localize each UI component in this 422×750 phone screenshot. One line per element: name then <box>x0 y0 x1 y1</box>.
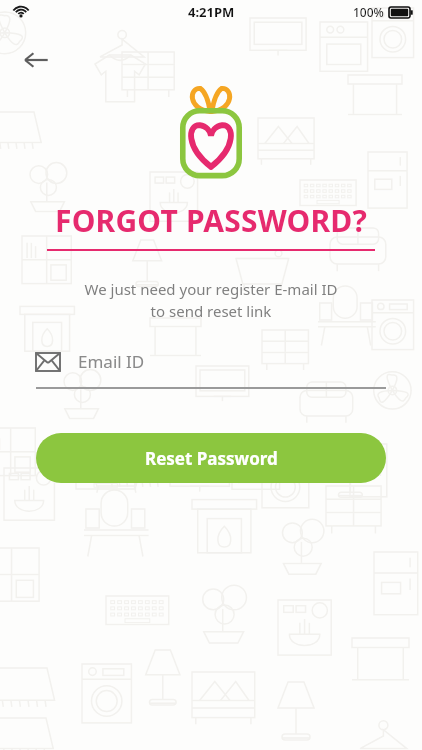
staticText: We just need your register E-mail ID to … <box>30 279 392 322</box>
staticText: FORGOT PASSWORD? <box>0 200 422 241</box>
staticText: 100% <box>353 4 384 20</box>
staticText: Email ID <box>78 350 145 373</box>
button[interactable]: Back <box>14 38 58 82</box>
button[interactable]: Email ID <box>36 350 386 389</box>
staticText: Reset Password <box>145 447 278 470</box>
staticText: 4:21PM <box>188 3 235 21</box>
button[interactable]: Reset Password <box>36 433 386 483</box>
